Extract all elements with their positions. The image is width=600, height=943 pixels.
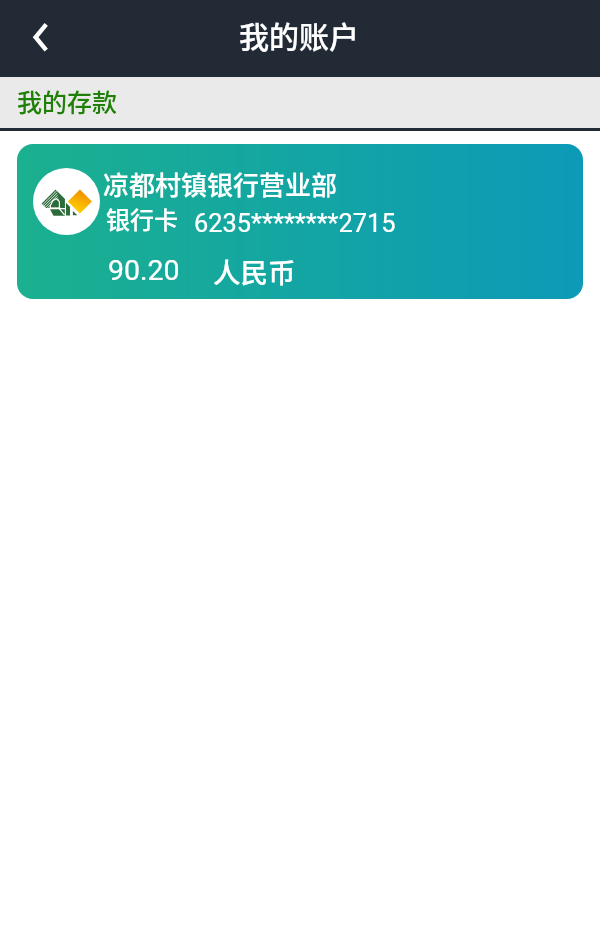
staticText: 我的账户 — [239, 13, 359, 56]
staticText: 人民币 — [213, 251, 296, 291]
staticText: 凉都村镇银行营业部 — [103, 165, 338, 203]
staticText: 银行卡 — [106, 201, 178, 236]
staticText: 我的存款 — [17, 83, 118, 119]
button[interactable]: 凉都村镇银行营业部 — [17, 144, 583, 299]
staticText: 90.20 — [108, 254, 180, 287]
button[interactable]: Back — [0, 0, 78, 77]
staticText: 6235********2715 — [194, 208, 396, 238]
